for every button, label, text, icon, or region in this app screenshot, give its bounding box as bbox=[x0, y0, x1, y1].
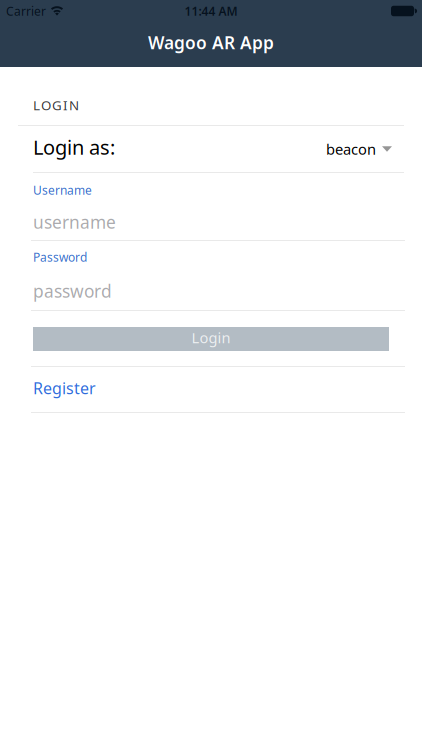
staticText: 11:44 AM bbox=[184, 3, 237, 19]
button[interactable]: Login bbox=[33, 327, 389, 351]
staticText: beacon bbox=[326, 139, 376, 159]
staticText: LOGIN bbox=[33, 96, 79, 114]
button[interactable]: username bbox=[0, 210, 422, 234]
button[interactable]: Register bbox=[0, 367, 422, 412]
staticText: Carrier bbox=[6, 3, 46, 19]
staticText: Wagoo AR App bbox=[148, 31, 274, 54]
staticText: Login bbox=[191, 328, 230, 347]
staticText: Login as: bbox=[33, 134, 115, 160]
button[interactable]: beacon bbox=[326, 139, 392, 159]
staticText: Username bbox=[33, 182, 92, 198]
staticText: Password bbox=[33, 249, 87, 265]
button[interactable]: password bbox=[0, 279, 422, 303]
staticText: Register bbox=[33, 377, 96, 399]
staticText: password bbox=[33, 279, 112, 302]
staticText: username bbox=[33, 210, 116, 233]
